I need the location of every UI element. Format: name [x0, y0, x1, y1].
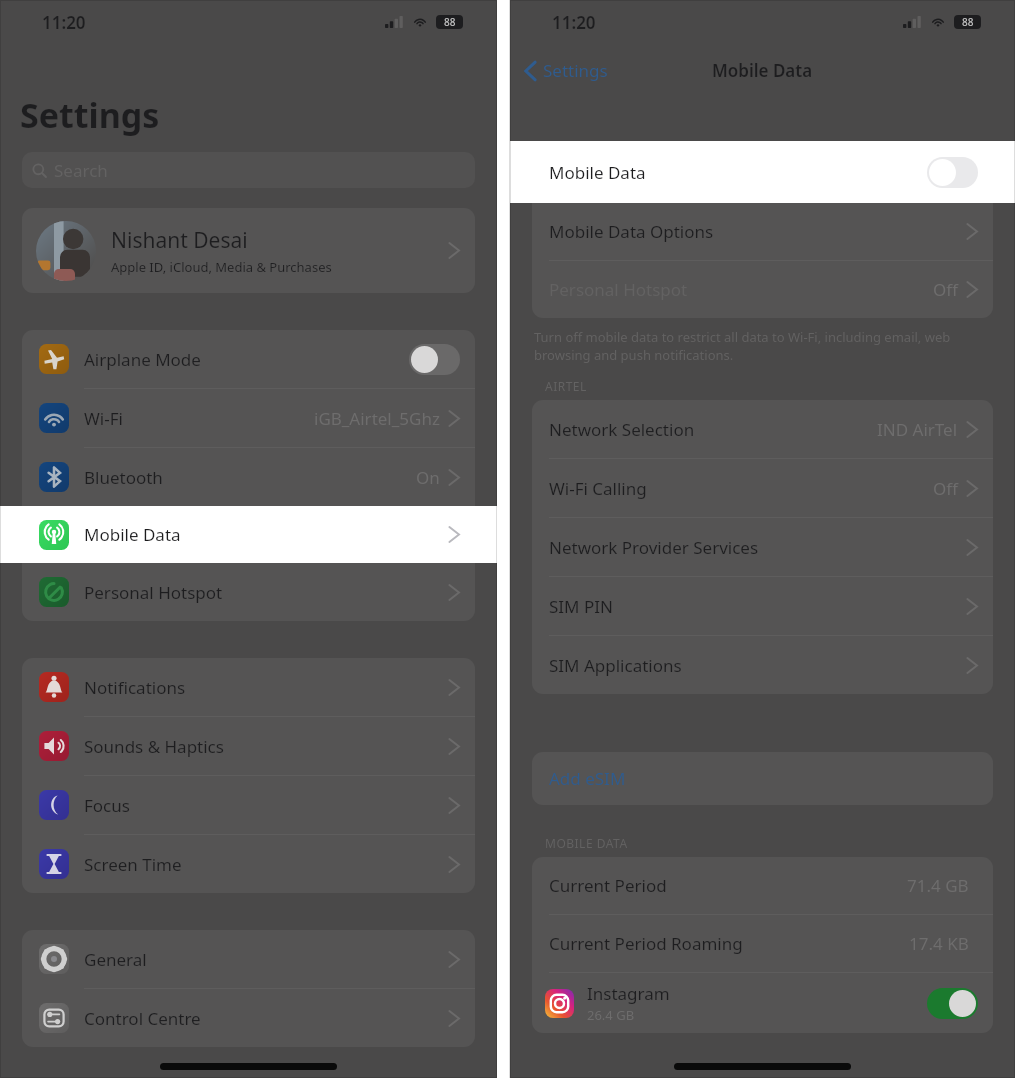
staticText: Personal Hotspot	[549, 278, 688, 301]
button[interactable]: Add eSIM	[532, 752, 993, 805]
staticText: Control Centre	[84, 1007, 201, 1030]
staticText: Focus	[84, 794, 130, 817]
staticText: SIM PIN	[549, 595, 613, 618]
staticText: 26.4 GB	[587, 1006, 635, 1024]
button[interactable]: Nishant Desai	[22, 208, 475, 293]
button[interactable]: Notifications	[22, 658, 475, 716]
staticText: Turn off mobile data to restrict all dat…	[534, 328, 991, 364]
button[interactable]: Toggle off	[409, 344, 460, 375]
staticText: IND AirTel	[877, 418, 958, 441]
button[interactable]: Screen Time	[22, 835, 475, 893]
button[interactable]: Network Selection	[532, 400, 993, 458]
staticText: MOBILE DATA	[545, 835, 628, 851]
staticText: Instagram	[587, 982, 670, 1005]
button[interactable]: Bluetooth	[22, 448, 475, 506]
staticText: Wi-Fi Calling	[549, 477, 647, 500]
button[interactable]: Instagram	[532, 973, 993, 1033]
button[interactable]: SIM Applications	[532, 636, 993, 694]
staticText: Airplane Mode	[84, 348, 201, 371]
staticText: 88	[444, 15, 456, 29]
staticText: Sounds & Haptics	[84, 735, 224, 758]
staticText: Add eSIM	[549, 767, 626, 790]
button[interactable]: Focus	[22, 776, 475, 834]
button[interactable]: Mobile Data	[532, 145, 993, 199]
button[interactable]: Wi-Fi	[22, 389, 475, 447]
staticText: Mobile Data	[84, 523, 181, 546]
button[interactable]: General	[22, 930, 475, 988]
button[interactable]: Airplane Mode	[22, 330, 475, 388]
staticText: Off	[933, 477, 958, 500]
button[interactable]: Wi-Fi Calling	[532, 459, 993, 517]
staticText: Wi-Fi	[84, 407, 123, 430]
staticText: iGB_Airtel_5Ghz	[314, 407, 440, 430]
staticText: 71.4 GB	[907, 874, 969, 897]
button[interactable]: Network Provider Services	[532, 518, 993, 576]
staticText: Network Selection	[549, 418, 695, 441]
button[interactable]: Sounds & Haptics	[22, 717, 475, 775]
staticText: Settings	[543, 59, 608, 82]
staticText: Search	[54, 159, 108, 182]
staticText: Mobile Data	[549, 161, 646, 184]
staticText: Bluetooth	[84, 466, 163, 489]
staticText: Apple ID, iCloud, Media & Purchases	[111, 258, 332, 276]
staticText: Notifications	[84, 676, 186, 699]
button[interactable]: Mobile Data Options	[532, 203, 993, 260]
button[interactable]: Current Period Roaming	[532, 915, 993, 972]
staticText: Network Provider Services	[549, 536, 759, 559]
staticText: On	[416, 466, 440, 489]
button[interactable]: Control Centre	[22, 989, 475, 1047]
staticText: 17.4 KB	[909, 932, 969, 955]
staticText: General	[84, 948, 147, 971]
button[interactable]: Mobile Data	[22, 506, 475, 563]
staticText: Mobile Data Options	[549, 220, 714, 243]
button[interactable]: Current Period	[532, 857, 993, 914]
staticText: Nishant Desai	[111, 226, 248, 255]
staticText: Off	[933, 278, 958, 301]
staticText: 88	[962, 15, 974, 29]
button[interactable]: Toggle off	[927, 157, 978, 188]
staticText: AIRTEL	[545, 378, 587, 394]
button[interactable]: Personal Hotspot	[22, 563, 475, 621]
staticText: Current Period	[549, 874, 667, 897]
staticText: SIM Applications	[549, 654, 682, 677]
staticText: Personal Hotspot	[84, 581, 223, 604]
staticText: Mobile Data	[712, 59, 813, 82]
button[interactable]: Settings	[510, 53, 616, 88]
staticText: Current Period Roaming	[549, 932, 743, 955]
staticText: Screen Time	[84, 853, 182, 876]
staticText: Settings	[20, 92, 160, 138]
button[interactable]: SIM PIN	[532, 577, 993, 635]
button[interactable]: Toggle on	[927, 988, 978, 1019]
staticText: 11:20	[42, 11, 86, 34]
staticText: 11:20	[552, 11, 596, 34]
